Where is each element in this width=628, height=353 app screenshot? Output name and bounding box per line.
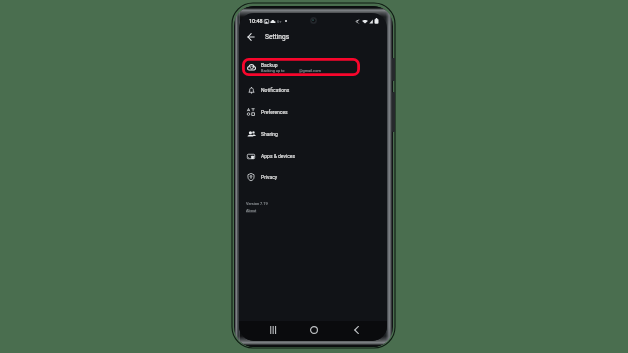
button[interactable]: Back: [244, 30, 257, 43]
button[interactable]: Sharing: [239, 123, 387, 145]
staticText: Backup: [261, 62, 278, 68]
staticText: 10:48: [249, 18, 263, 24]
staticText: Settings: [265, 33, 290, 41]
button[interactable]: Back: [350, 324, 362, 336]
staticText: About: [246, 208, 257, 213]
staticText: Sharing: [261, 131, 278, 137]
staticText: Apps & devices: [261, 153, 295, 159]
staticText: Notifications: [261, 87, 290, 93]
staticText: Preferences: [261, 109, 288, 115]
staticText: 6+: [277, 19, 282, 24]
staticText: Version 7.19: [246, 201, 268, 206]
staticText: Privacy: [261, 174, 278, 180]
button[interactable]: Backup: [239, 56, 387, 78]
button[interactable]: Apps & devices: [239, 145, 387, 167]
button[interactable]: Privacy: [239, 166, 387, 188]
button[interactable]: Preferences: [239, 101, 387, 123]
button[interactable]: Recent apps: [267, 324, 279, 336]
button[interactable]: About: [246, 208, 257, 213]
button[interactable]: Home: [308, 324, 320, 336]
button[interactable]: Notifications: [239, 79, 387, 101]
staticText: Backing up to: [261, 68, 285, 73]
staticText: @gmail.com: [299, 68, 321, 73]
